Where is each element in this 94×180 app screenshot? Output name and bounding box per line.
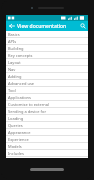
staticText: Adding bbox=[8, 74, 22, 79]
button[interactable]: Advanced use bbox=[6, 80, 88, 87]
button[interactable]: Appearance bbox=[6, 129, 88, 136]
staticText: View documentation bbox=[17, 23, 67, 30]
button[interactable]: Applications bbox=[6, 94, 88, 101]
button[interactable]: Key concepts bbox=[6, 52, 88, 59]
staticText: Layout bbox=[8, 60, 21, 65]
staticText: Queries bbox=[8, 123, 23, 128]
button[interactable]: Sending a device for bbox=[6, 108, 88, 115]
button[interactable]: Adding bbox=[6, 73, 88, 80]
button[interactable]: APIs bbox=[6, 38, 88, 45]
button[interactable]: Experience bbox=[6, 136, 88, 143]
button[interactable]: Nav bbox=[6, 66, 88, 73]
staticText: Loading bbox=[8, 116, 24, 121]
staticText: Building bbox=[8, 46, 24, 51]
button[interactable]: Models bbox=[6, 143, 88, 150]
staticText: Basics bbox=[8, 32, 20, 37]
staticText: Models bbox=[8, 144, 22, 149]
button[interactable]: Search bbox=[77, 21, 88, 31]
staticText: APIs bbox=[8, 39, 17, 44]
staticText: Customise to external bbox=[8, 102, 50, 107]
button[interactable]: Loading bbox=[6, 115, 88, 122]
staticText: Sending a device for bbox=[8, 109, 47, 114]
staticText: Experience bbox=[8, 137, 29, 142]
staticText: Appearance bbox=[8, 130, 31, 135]
staticText: Tool bbox=[8, 88, 16, 93]
button[interactable]: Building bbox=[6, 45, 88, 52]
button[interactable]: Navigate up bbox=[6, 21, 17, 31]
button[interactable]: Includes bbox=[6, 150, 88, 157]
button[interactable]: Basics bbox=[6, 31, 88, 38]
staticText: Applications bbox=[8, 95, 31, 100]
button[interactable]: Layout bbox=[6, 59, 88, 66]
staticText: Includes bbox=[8, 151, 24, 156]
button[interactable]: Customise to external bbox=[6, 101, 88, 108]
button[interactable]: Queries bbox=[6, 122, 88, 129]
button[interactable]: Tool bbox=[6, 87, 88, 94]
staticText: Advanced use bbox=[8, 81, 35, 86]
staticText: Key concepts bbox=[8, 53, 33, 58]
staticText: Nav bbox=[8, 67, 16, 72]
